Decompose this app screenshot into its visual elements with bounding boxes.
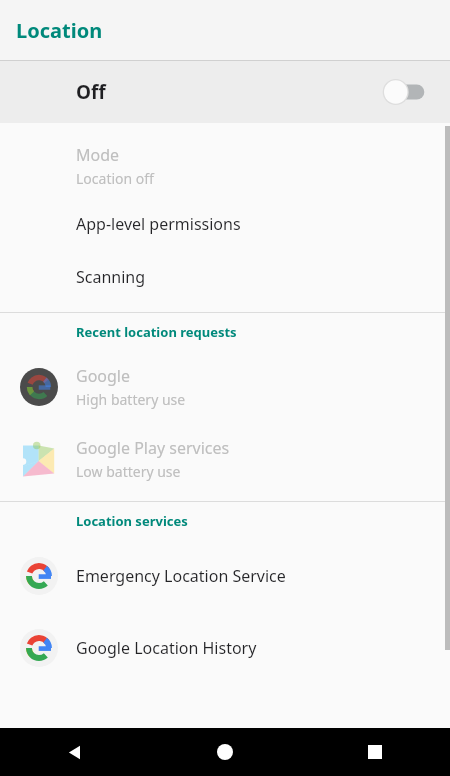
button[interactable]: Mode [0, 135, 450, 197]
staticText: Location services [76, 512, 188, 530]
button[interactable]: Home [150, 728, 300, 776]
button[interactable]: Back [0, 728, 150, 776]
staticText: Mode [76, 144, 120, 166]
button[interactable]: Scanning [0, 250, 450, 303]
staticText: Recent location requests [76, 323, 237, 341]
button[interactable]: Recent apps [300, 728, 450, 776]
staticText: Google Play services [76, 437, 230, 459]
button[interactable]: App-level permissions [0, 197, 450, 250]
staticText: High battery use [76, 390, 186, 409]
staticText: Google [76, 365, 131, 387]
button[interactable]: Google [0, 351, 450, 423]
staticText: Location off [76, 169, 154, 188]
staticText: Low battery use [76, 462, 181, 481]
staticText: Off [76, 79, 106, 105]
button[interactable]: Google Location History [0, 612, 450, 684]
button[interactable]: Location master switch, off [382, 79, 428, 105]
staticText: Scanning [76, 266, 146, 288]
button[interactable]: Emergency Location Service [0, 540, 450, 612]
staticText: Location [16, 17, 103, 44]
button[interactable]: Off [0, 61, 450, 123]
staticText: Emergency Location Service [76, 565, 286, 587]
button[interactable]: Google Play services [0, 423, 450, 495]
staticText: App-level permissions [76, 213, 241, 235]
staticText: Google Location History [76, 637, 257, 659]
